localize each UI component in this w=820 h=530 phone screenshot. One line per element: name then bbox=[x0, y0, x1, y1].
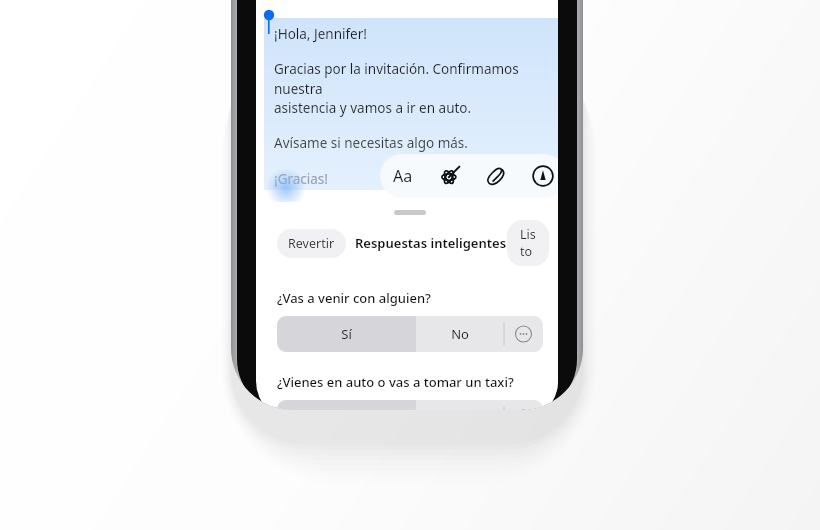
staticText: Luis bbox=[274, 188, 300, 190]
staticText: Respuestas inteligentes bbox=[355, 234, 507, 252]
button[interactable]: More options bbox=[504, 316, 543, 352]
button[interactable]: Revertir bbox=[277, 229, 346, 258]
button[interactable]: Writing tools bbox=[426, 154, 474, 198]
staticText: Gracias por la invitación. Confirmamos n… bbox=[274, 60, 556, 117]
staticText: Aa bbox=[393, 165, 413, 187]
staticText: Revertir bbox=[288, 235, 335, 252]
staticText: ¡Gracias! bbox=[274, 170, 328, 188]
staticText: No bbox=[451, 325, 469, 343]
staticText: Avísame si necesitas algo más. bbox=[274, 134, 468, 152]
button[interactable]: More options bbox=[504, 400, 543, 410]
button[interactable]: No bbox=[416, 316, 504, 352]
staticText: Listo bbox=[520, 226, 536, 260]
staticText: ¡Hola, Jennifer! bbox=[274, 25, 367, 43]
button[interactable]: Text formatting bbox=[380, 154, 426, 198]
staticText: Sí bbox=[341, 325, 352, 343]
staticText: ¿Vas a venir con alguien? bbox=[277, 289, 431, 307]
button[interactable]: Listo bbox=[507, 220, 549, 266]
button[interactable]: Auto bbox=[277, 400, 416, 410]
button[interactable]: Markup bbox=[520, 154, 558, 198]
button[interactable]: Sí bbox=[277, 316, 416, 352]
button[interactable]: Attach file bbox=[474, 154, 520, 198]
staticText: ¿Vienes en auto o vas a tomar un taxi? bbox=[277, 373, 514, 391]
